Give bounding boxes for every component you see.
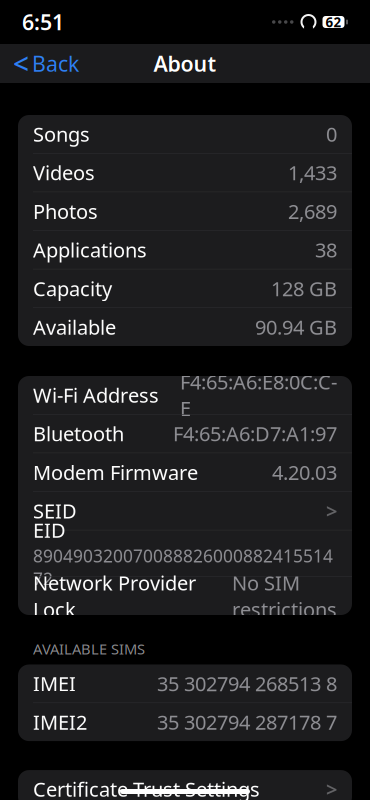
staticText: 2,689 bbox=[288, 198, 337, 224]
staticText: 89049032007008882600088241551472 bbox=[33, 544, 333, 590]
staticText: Bluetooth bbox=[33, 420, 124, 447]
button[interactable]: Bluetooth bbox=[18, 415, 352, 453]
button[interactable]: Videos bbox=[18, 154, 352, 192]
staticText: F4:65:A6:D7:A1:97 bbox=[173, 420, 337, 447]
staticText: 128 GB bbox=[271, 275, 337, 302]
button[interactable]: Available bbox=[18, 308, 352, 346]
staticText: Songs bbox=[33, 121, 90, 147]
staticText: Certificate Trust Settings bbox=[33, 776, 260, 800]
staticText: IMEI bbox=[33, 670, 76, 697]
staticText: > bbox=[326, 497, 337, 524]
staticText: Back bbox=[32, 49, 79, 78]
button[interactable]: < bbox=[3, 44, 89, 83]
button[interactable]: Photos bbox=[18, 192, 352, 230]
staticText: Photos bbox=[33, 198, 98, 224]
staticText: SEID bbox=[33, 497, 77, 524]
button[interactable]: EID bbox=[18, 530, 352, 576]
button[interactable]: Modem Firmware bbox=[18, 453, 352, 491]
button[interactable]: IMEI bbox=[18, 664, 352, 702]
staticText: About bbox=[153, 49, 216, 78]
staticText: F4:65:A6:E8:0C:CE bbox=[180, 368, 337, 421]
staticText: Wi-Fi Address bbox=[33, 382, 159, 408]
staticText: < bbox=[13, 45, 29, 82]
button[interactable]: Network Provider Lock bbox=[18, 577, 352, 615]
staticText: No SIM restrictions bbox=[232, 569, 337, 622]
staticText: 1,433 bbox=[288, 159, 337, 186]
button[interactable]: IMEI2 bbox=[18, 703, 352, 741]
button[interactable]: Wi-Fi Address bbox=[18, 376, 352, 414]
button[interactable]: Applications bbox=[18, 231, 352, 269]
staticText: Network Provider Lock bbox=[33, 569, 196, 622]
staticText: Available bbox=[33, 314, 116, 340]
staticText: 35 302794 268513 8 bbox=[157, 670, 337, 697]
staticText: 38 bbox=[315, 236, 337, 263]
staticText: Modem Firmware bbox=[33, 459, 198, 485]
staticText: 35 302794 287178 7 bbox=[157, 709, 337, 735]
staticText: 90.94 GB bbox=[255, 314, 337, 340]
staticText: AVAILABLE SIMS bbox=[33, 639, 145, 658]
staticText: 4.20.03 bbox=[272, 459, 337, 485]
staticText: Capacity bbox=[33, 275, 112, 302]
staticText: > bbox=[326, 776, 337, 800]
staticText: 6:51 bbox=[22, 8, 64, 36]
button[interactable]: Capacity bbox=[18, 269, 352, 307]
staticText: 0 bbox=[326, 121, 337, 147]
button[interactable]: Songs bbox=[18, 115, 352, 153]
button[interactable]: Certificate Trust Settings bbox=[18, 770, 352, 800]
staticText: EID bbox=[33, 517, 66, 543]
button[interactable]: SEID bbox=[18, 492, 352, 530]
staticText: Applications bbox=[33, 236, 147, 263]
staticText: IMEI2 bbox=[33, 709, 87, 735]
staticText: Videos bbox=[33, 159, 95, 186]
staticText: 62 bbox=[325, 13, 341, 31]
